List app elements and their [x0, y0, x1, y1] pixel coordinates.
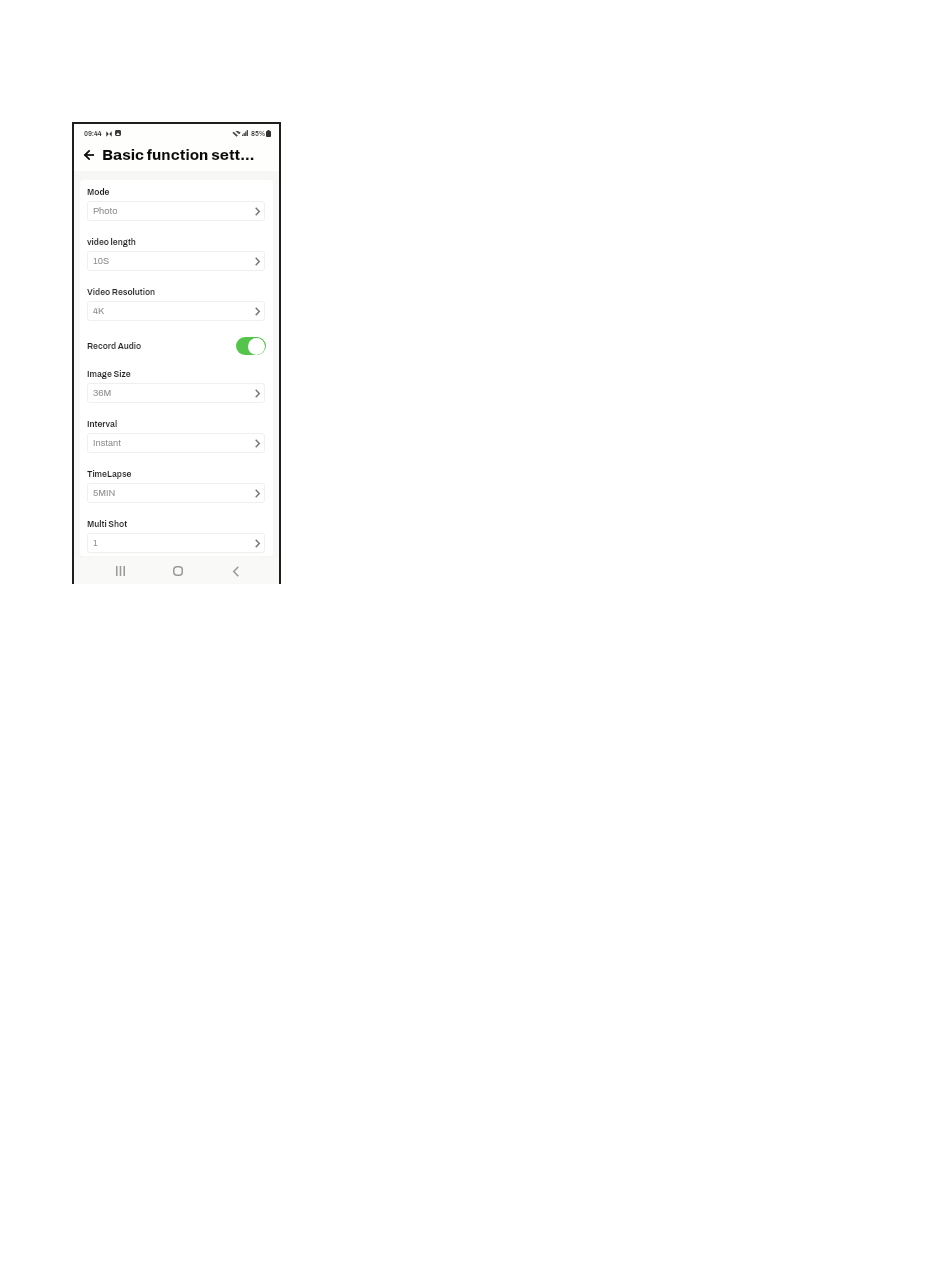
staticText: Basic function sett...	[102, 147, 255, 163]
staticText: TimeLapse	[87, 470, 132, 479]
button[interactable]: Multi Shot	[87, 520, 266, 553]
staticText: Image Size	[87, 370, 131, 379]
button[interactable]: TimeLapse	[87, 470, 266, 503]
staticText: Instant	[93, 438, 121, 448]
button[interactable]: Home	[167, 560, 189, 582]
staticText: Multi Shot	[87, 520, 128, 529]
staticText: video length	[87, 238, 136, 247]
staticText: 1	[93, 538, 98, 548]
staticText: Photo	[93, 206, 118, 216]
staticText: Mode	[87, 188, 110, 197]
button[interactable]: video length	[87, 238, 266, 271]
staticText: 4K	[93, 306, 105, 316]
button[interactable]: Mode	[87, 188, 266, 221]
button[interactable]: Interval	[87, 420, 266, 453]
staticText: 09:44	[84, 130, 102, 137]
staticText: Video Resolution	[87, 288, 156, 297]
button[interactable]: Video Resolution	[87, 288, 266, 321]
button[interactable]: Back	[80, 146, 98, 164]
staticText: 5MIN	[93, 488, 116, 498]
button[interactable]: Record Audio	[87, 336, 266, 355]
staticText: Record Audio	[87, 342, 142, 351]
staticText: 10S	[93, 256, 110, 266]
button[interactable]: Back	[225, 560, 247, 582]
button[interactable]: Image Size	[87, 370, 266, 403]
staticText: Interval	[87, 420, 118, 429]
staticText: 36M	[93, 388, 112, 398]
staticText: 85%	[251, 130, 266, 137]
button[interactable]: Recents	[109, 560, 131, 582]
